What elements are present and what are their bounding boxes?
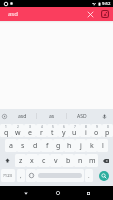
- button[interactable]: Search with camera: [99, 8, 111, 20]
- staticText: a: [9, 141, 13, 151]
- staticText: l: [102, 141, 104, 151]
- button[interactable]: Home: [48, 186, 67, 200]
- button[interactable]: v: [50, 154, 62, 167]
- staticText: 0: [107, 125, 109, 129]
- button[interactable]: n: [74, 154, 86, 167]
- staticText: k: [90, 141, 94, 151]
- button[interactable]: x: [26, 154, 38, 167]
- staticText: asd: [18, 113, 27, 120]
- button[interactable]: g: [53, 139, 64, 152]
- button[interactable]: d: [29, 139, 41, 152]
- staticText: i: [85, 128, 87, 137]
- button[interactable]: 7: [69, 124, 80, 137]
- button[interactable]: Voice input: [96, 109, 113, 123]
- staticText: w: [15, 128, 21, 137]
- staticText: c: [42, 156, 46, 166]
- button[interactable]: Backspace: [99, 154, 112, 167]
- button[interactable]: k: [86, 139, 97, 152]
- button[interactable]: 2: [12, 124, 24, 137]
- staticText: r: [40, 128, 43, 137]
- staticText: ?123: [3, 173, 13, 179]
- button[interactable]: 3: [24, 124, 36, 137]
- staticText: 4: [41, 125, 43, 129]
- button[interactable]: More suggestions: [0, 109, 8, 123]
- button[interactable]: c: [38, 154, 50, 167]
- button[interactable]: s: [17, 139, 29, 152]
- button[interactable]: 6: [58, 124, 69, 137]
- staticText: 6: [63, 125, 65, 129]
- staticText: e: [28, 128, 32, 137]
- staticText: ,: [20, 172, 22, 180]
- staticText: v: [54, 156, 58, 166]
- button[interactable]: z: [15, 154, 26, 167]
- staticText: b: [66, 156, 71, 166]
- staticText: 1: [5, 125, 7, 129]
- staticText: 2: [17, 125, 19, 129]
- button[interactable]: 4: [36, 124, 47, 137]
- button[interactable]: ,: [17, 169, 25, 182]
- staticText: 9:52: [102, 1, 111, 7]
- button[interactable]: asd: [8, 109, 36, 123]
- staticText: q: [4, 128, 9, 137]
- staticText: m: [89, 156, 96, 166]
- staticText: f: [46, 141, 49, 151]
- button[interactable]: l: [97, 139, 108, 152]
- staticText: p: [105, 128, 110, 137]
- staticText: 5: [52, 125, 54, 129]
- staticText: g: [56, 141, 61, 151]
- staticText: 8: [85, 125, 87, 129]
- button[interactable]: Shift: [1, 154, 14, 167]
- button[interactable]: b: [62, 154, 74, 167]
- button[interactable]: j: [75, 139, 86, 152]
- button[interactable]: 1: [0, 124, 12, 137]
- button[interactable]: m: [86, 154, 98, 167]
- staticText: as: [49, 113, 55, 120]
- staticText: s: [21, 141, 25, 151]
- button[interactable]: Emoji: [26, 169, 36, 182]
- button[interactable]: ASD: [67, 109, 96, 123]
- button[interactable]: ?123: [1, 169, 15, 182]
- staticText: o: [94, 128, 99, 137]
- button[interactable]: Clear query: [84, 8, 96, 20]
- button[interactable]: f: [41, 139, 53, 152]
- staticText: .: [88, 172, 90, 180]
- button[interactable]: h: [64, 139, 75, 152]
- button[interactable]: as: [37, 109, 66, 123]
- button[interactable]: Back: [16, 186, 35, 200]
- staticText: 3: [29, 125, 31, 129]
- button[interactable]: Search: [99, 171, 109, 181]
- staticText: 9: [96, 125, 98, 129]
- staticText: x: [30, 156, 34, 166]
- button[interactable]: Space: [36, 169, 84, 182]
- button[interactable]: .: [85, 169, 93, 182]
- button[interactable]: 8: [80, 124, 91, 137]
- button[interactable]: a: [5, 139, 17, 152]
- staticText: y: [62, 128, 66, 137]
- button[interactable]: 9: [91, 124, 102, 137]
- staticText: t: [51, 128, 54, 137]
- staticText: ASD: [77, 113, 87, 120]
- staticText: u: [72, 128, 77, 137]
- staticText: h: [67, 141, 72, 151]
- staticText: asd: [8, 10, 18, 18]
- button[interactable]: Recent apps: [79, 186, 98, 200]
- staticText: 7: [74, 125, 76, 129]
- staticText: z: [19, 156, 23, 166]
- staticText: d: [33, 141, 38, 151]
- staticText: n: [78, 156, 83, 166]
- staticText: j: [80, 141, 82, 151]
- button[interactable]: 5: [47, 124, 58, 137]
- button[interactable]: 0: [102, 124, 113, 137]
